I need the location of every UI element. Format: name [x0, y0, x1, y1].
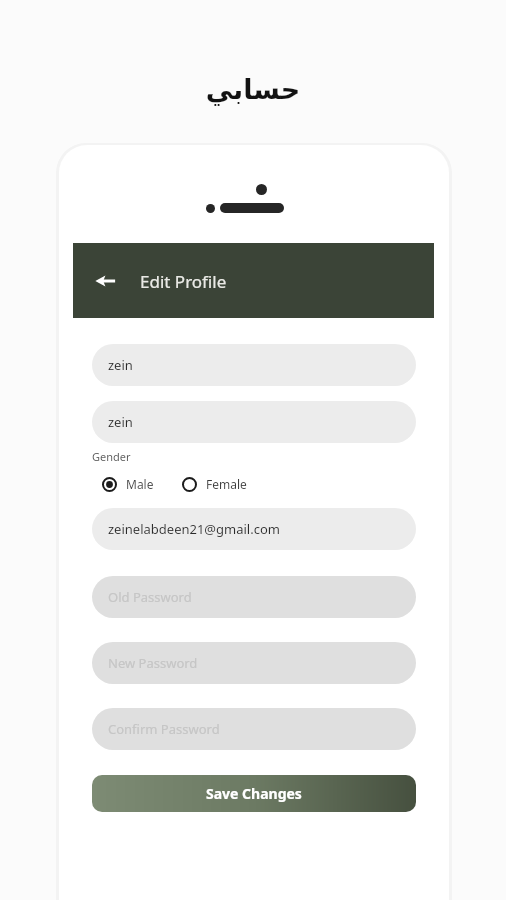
button[interactable]: Female [182, 476, 247, 492]
button[interactable]: zeinelabdeen21@gmail.com [92, 508, 416, 550]
staticText: zein [108, 356, 133, 374]
staticText: Edit Profile [140, 270, 227, 293]
staticText: Male [126, 476, 154, 492]
button[interactable]: zein [92, 344, 416, 386]
button[interactable]: zein [92, 401, 416, 443]
staticText: Confirm Password [108, 720, 220, 738]
staticText: zeinelabdeen21@gmail.com [108, 520, 280, 538]
staticText: New Password [108, 654, 198, 672]
staticText: حسابي [0, 74, 506, 105]
button[interactable]: Back [90, 266, 120, 296]
staticText: Female [206, 476, 247, 492]
staticText: zein [108, 413, 133, 431]
staticText: Old Password [108, 588, 192, 606]
button[interactable]: New Password [92, 642, 416, 684]
button[interactable]: Male [102, 476, 154, 492]
button[interactable]: Old Password [92, 576, 416, 618]
button[interactable]: Confirm Password [92, 708, 416, 750]
button[interactable]: Save Changes [92, 775, 416, 812]
staticText: Save Changes [206, 784, 302, 803]
button[interactable]: Back [73, 243, 434, 318]
staticText: Gender [92, 449, 131, 464]
